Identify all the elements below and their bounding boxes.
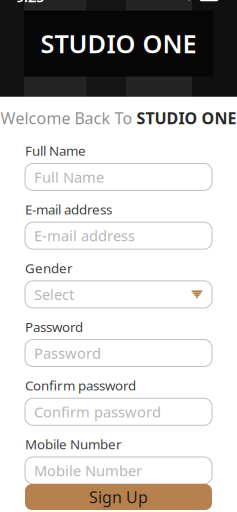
button[interactable]: Select <box>25 281 212 308</box>
staticText: Gender <box>25 259 73 277</box>
button[interactable]: Sign Up <box>25 484 212 510</box>
staticText: STUDIO ONE <box>40 27 196 60</box>
staticText: Select <box>34 285 74 304</box>
button[interactable]: Confirm password <box>25 398 212 425</box>
staticText: Full Name <box>34 167 104 187</box>
staticText: Sign Up <box>89 486 148 508</box>
button[interactable]: Full Name <box>25 163 212 190</box>
staticText: E-mail address <box>25 200 112 218</box>
staticText: Welcome Back To <box>0 107 136 129</box>
staticText: Confirm password <box>34 402 161 421</box>
staticText: Mobile Number <box>34 461 142 480</box>
button[interactable]: Password <box>25 340 212 367</box>
staticText: Password <box>34 343 101 363</box>
staticText: Password <box>25 318 83 336</box>
staticText: Mobile Number <box>25 435 122 453</box>
staticText: E-mail address <box>34 226 135 245</box>
staticText: 9:25 <box>16 0 44 6</box>
button[interactable]: Mobile Number <box>25 457 212 484</box>
staticText: STUDIO ONE <box>136 107 236 129</box>
staticText: Confirm password <box>25 377 136 394</box>
button[interactable]: E-mail address <box>25 222 212 249</box>
staticText: Full Name <box>25 142 86 159</box>
